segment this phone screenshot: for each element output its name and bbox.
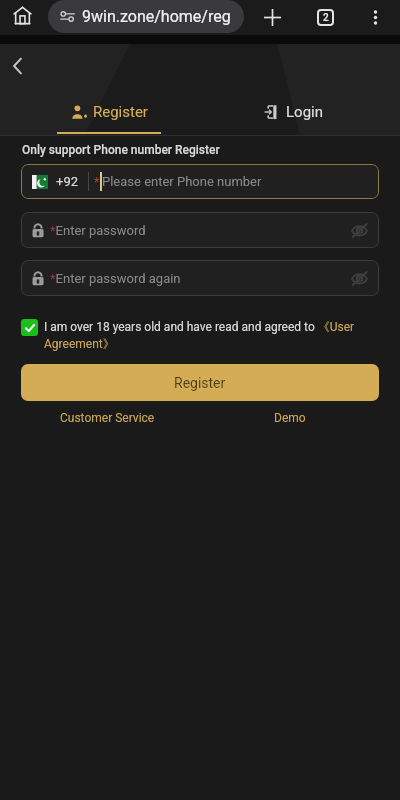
button[interactable]: Show password [349,220,369,240]
button[interactable]: *Enter password [32,212,369,248]
staticText: *Enter password [50,223,146,238]
staticText: Login [286,103,323,121]
staticText: Customer Service [60,411,155,425]
button[interactable]: More options [361,3,389,31]
staticText: Please enter Phone number [102,174,262,189]
button[interactable]: 9win.zone/home/reg [60,0,240,33]
button[interactable]: Login [201,103,386,136]
button[interactable]: Back [2,51,32,81]
staticText: * [94,174,100,189]
button[interactable]: +92 [32,164,368,199]
button[interactable]: Register [17,103,201,136]
button[interactable]: I am over 18 years old and have read and… [21,319,379,351]
staticText: I am over 18 years old and have read and… [44,319,379,351]
staticText: *Enter password again [50,271,181,286]
button[interactable]: *Enter password again [32,260,369,296]
button[interactable]: Demo [268,409,312,427]
button[interactable]: Tabs [311,3,339,31]
button[interactable]: New tab [258,3,286,31]
button[interactable]: Show password [349,268,369,288]
button[interactable]: Home [8,1,36,29]
staticText: Register [174,375,226,391]
staticText: 2 [323,12,329,24]
button[interactable]: Customer Service [54,409,161,427]
staticText: 9win.zone/home/reg [82,7,231,26]
staticText: Only support Phone number Register [22,143,220,157]
staticText: Demo [274,411,306,425]
staticText: Register [93,103,148,121]
button[interactable]: Register [21,364,379,401]
staticText: +92 [56,174,78,189]
